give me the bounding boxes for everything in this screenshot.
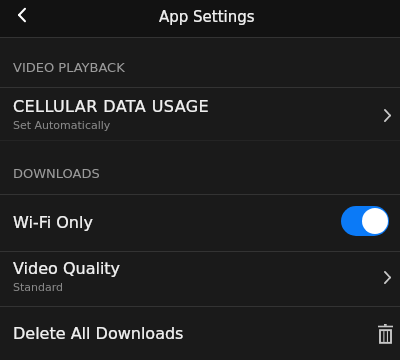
button[interactable]: Video Quality (0, 252, 400, 306)
button[interactable]: Back (0, 0, 42, 37)
staticText: VIDEO PLAYBACK (13, 60, 125, 75)
staticText: Standard (13, 281, 64, 294)
staticText: App Settings (159, 8, 255, 25)
button[interactable]: Wi-Fi Only (0, 195, 400, 251)
staticText: Set Automatically (13, 119, 111, 132)
button[interactable]: CELLULAR DATA USAGE (0, 88, 400, 140)
staticText: Delete All Downloads (13, 324, 377, 343)
staticText: DOWNLOADS (13, 166, 100, 181)
staticText: CELLULAR DATA USAGE (13, 97, 210, 116)
other: Wi-Fi Only toggle (341, 206, 389, 236)
staticText: Video Quality (13, 259, 121, 278)
staticText: Wi-Fi Only (13, 213, 341, 232)
button[interactable]: Delete All Downloads (0, 307, 400, 360)
